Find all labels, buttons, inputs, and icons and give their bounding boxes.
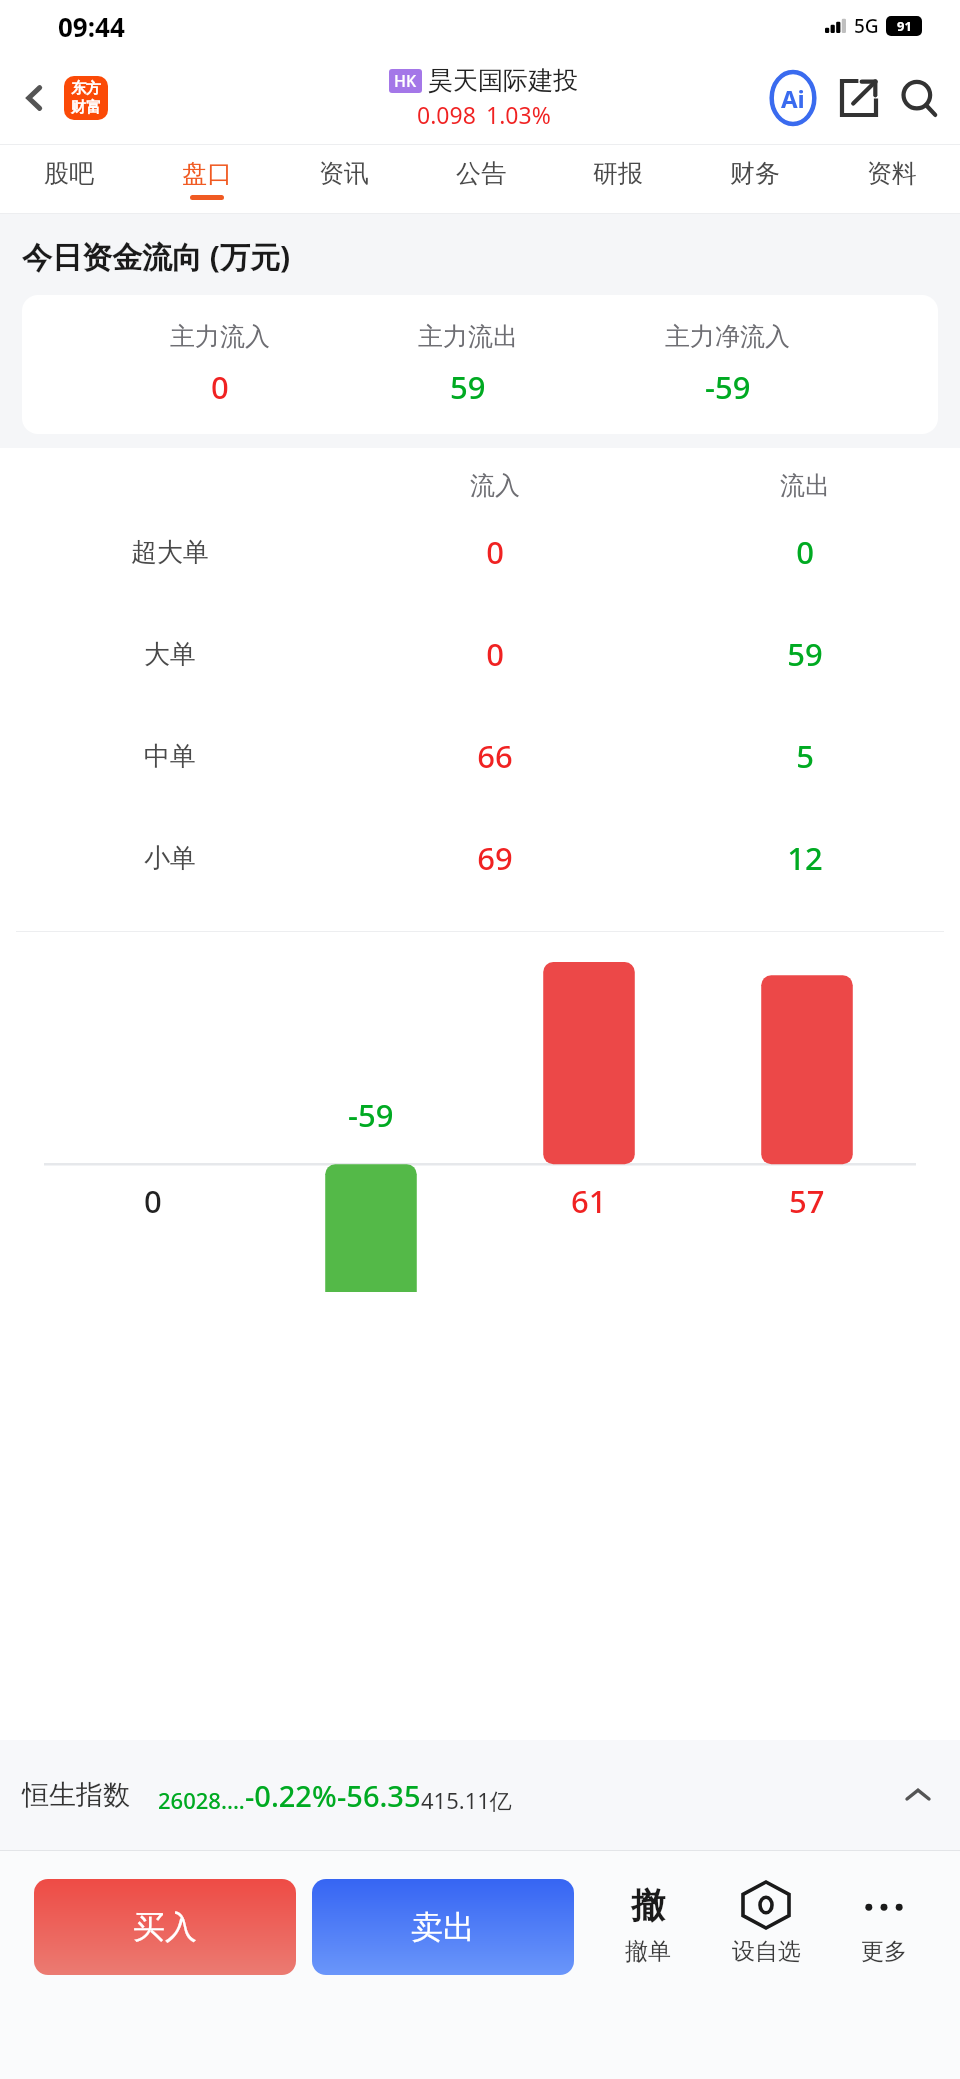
staticText: 资讯 xyxy=(319,158,369,189)
staticText: 59 xyxy=(450,366,486,408)
staticText: 更多 xyxy=(861,1937,907,1966)
staticText: 91 xyxy=(897,17,912,35)
staticText: 流入 xyxy=(340,470,650,501)
staticText: 财务 xyxy=(730,158,780,189)
staticText: -56.35 xyxy=(337,1776,421,1815)
button[interactable]: 撤 xyxy=(596,1879,700,1966)
button[interactable]: 主力流入 xyxy=(22,321,938,408)
button[interactable]: 资料 xyxy=(823,145,960,213)
button[interactable]: 恒生指数 xyxy=(22,1740,938,1850)
button[interactable]: Search xyxy=(892,71,946,125)
staticText: 主力流出 xyxy=(418,321,518,352)
button[interactable]: 财务 xyxy=(686,145,823,213)
staticText: 0 xyxy=(211,366,229,408)
button[interactable]: Share xyxy=(832,71,886,125)
staticText: 26028.... xyxy=(158,1785,245,1815)
staticText: 09:44 xyxy=(58,9,125,44)
staticText: 恒生指数 xyxy=(22,1778,130,1812)
button[interactable]: Back xyxy=(10,73,60,123)
button[interactable]: 盘口 xyxy=(138,145,275,213)
staticText: 财富 xyxy=(71,98,101,117)
staticText: -0.22% xyxy=(245,1776,337,1815)
staticText: 股吧 xyxy=(44,158,94,189)
staticText: 东方 xyxy=(71,79,101,98)
staticText: 流出 xyxy=(650,470,960,501)
staticText: 12 xyxy=(650,837,960,879)
staticText: 买入 xyxy=(133,1907,197,1947)
button[interactable]: 公告 xyxy=(412,145,549,213)
staticText: 大单 xyxy=(0,638,340,671)
staticText: 昊天国际建投 xyxy=(428,65,578,96)
button[interactable]: East Money xyxy=(64,76,108,120)
button[interactable]: 卖出 xyxy=(312,1879,574,1975)
staticText: -59 xyxy=(348,1094,394,1136)
other: Expand xyxy=(898,1775,938,1815)
staticText: 资料 xyxy=(867,158,917,189)
button[interactable]: 中单 xyxy=(0,705,960,807)
staticText: 今日资金流向 (万元) xyxy=(22,236,291,277)
staticText: 盘口 xyxy=(182,158,232,189)
staticText: 撤单 xyxy=(625,1937,671,1966)
staticText: 公告 xyxy=(456,158,506,189)
staticText: 0 xyxy=(340,531,650,573)
staticText: 0 xyxy=(340,633,650,675)
staticText: 57 xyxy=(789,1180,825,1222)
staticText: 5 xyxy=(650,735,960,777)
staticText: 主力流入 xyxy=(170,321,270,352)
staticText: 撤 xyxy=(631,1884,665,1927)
staticText: 小单 xyxy=(0,842,340,875)
staticText: Ai xyxy=(781,82,805,115)
staticText: 主力净流入 xyxy=(665,321,790,352)
button[interactable]: 更多 xyxy=(832,1879,936,1966)
staticText: 研报 xyxy=(593,158,643,189)
staticText: 超大单 xyxy=(0,536,340,569)
staticText: 5G xyxy=(854,13,879,39)
button[interactable]: AI assistant xyxy=(764,69,822,127)
staticText: 0.098 xyxy=(417,99,476,130)
staticText: 59 xyxy=(650,633,960,675)
staticText: 卖出 xyxy=(411,1907,475,1947)
staticText: 设自选 xyxy=(732,1937,801,1966)
button[interactable]: 大单 xyxy=(0,603,960,705)
staticText: 1.03% xyxy=(486,99,551,130)
button[interactable]: 资讯 xyxy=(275,145,412,213)
staticText: 69 xyxy=(340,837,650,879)
button[interactable]: 买入 xyxy=(34,1879,296,1975)
staticText: HK xyxy=(394,70,417,92)
staticText: 61 xyxy=(571,1180,607,1222)
button[interactable]: 超大单 xyxy=(0,501,960,603)
staticText: 0 xyxy=(650,531,960,573)
button[interactable]: 股吧 xyxy=(0,145,138,213)
button[interactable]: 设自选 xyxy=(714,1879,818,1966)
staticText: 0 xyxy=(144,1180,162,1222)
staticText: 中单 xyxy=(0,740,340,773)
staticText: 415.11亿 xyxy=(421,1785,512,1815)
button[interactable]: 研报 xyxy=(549,145,686,213)
staticText: -59 xyxy=(705,366,751,408)
button[interactable]: 小单 xyxy=(0,807,960,909)
staticText: 66 xyxy=(340,735,650,777)
